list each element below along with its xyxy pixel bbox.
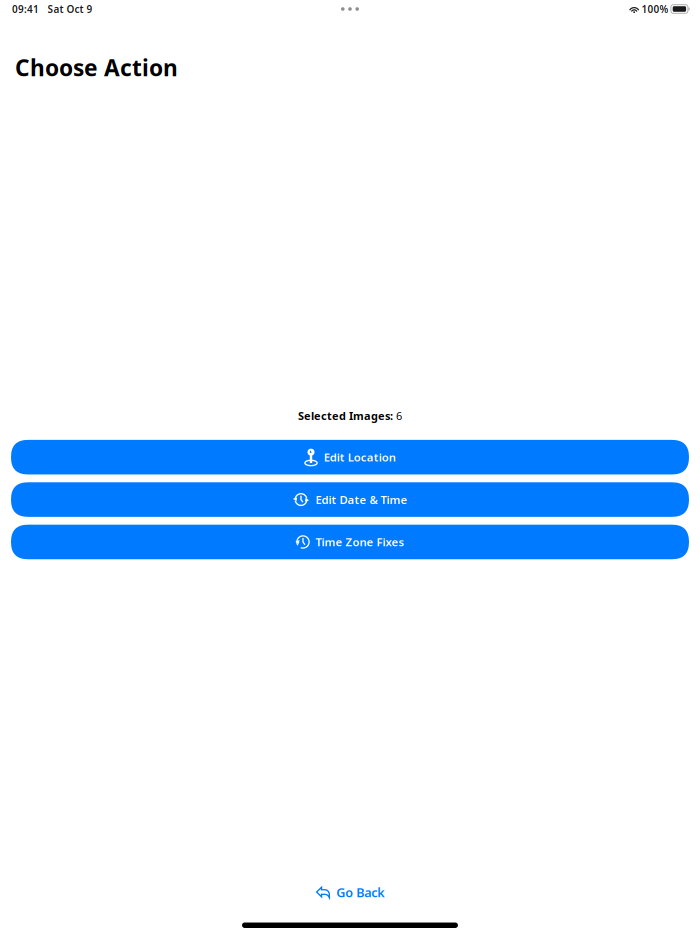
button[interactable]: Go Back [306, 878, 394, 907]
staticText: Sat Oct 9 [47, 2, 92, 16]
staticText: Choose Action [15, 52, 178, 83]
staticText: Edit Date & Time [315, 492, 407, 507]
button[interactable]: Edit Date & Time [11, 482, 689, 517]
staticText: Selected Images: [298, 408, 393, 423]
staticText: 100% [641, 2, 668, 16]
staticText: 6 [393, 408, 402, 423]
button[interactable]: Edit Location [11, 440, 689, 474]
staticText: Edit Location [324, 449, 396, 465]
staticText: Time Zone Fixes [316, 534, 405, 550]
staticText: Go Back [336, 884, 384, 901]
button[interactable]: Time Zone Fixes [11, 525, 689, 559]
staticText: 09:41 [12, 2, 39, 16]
